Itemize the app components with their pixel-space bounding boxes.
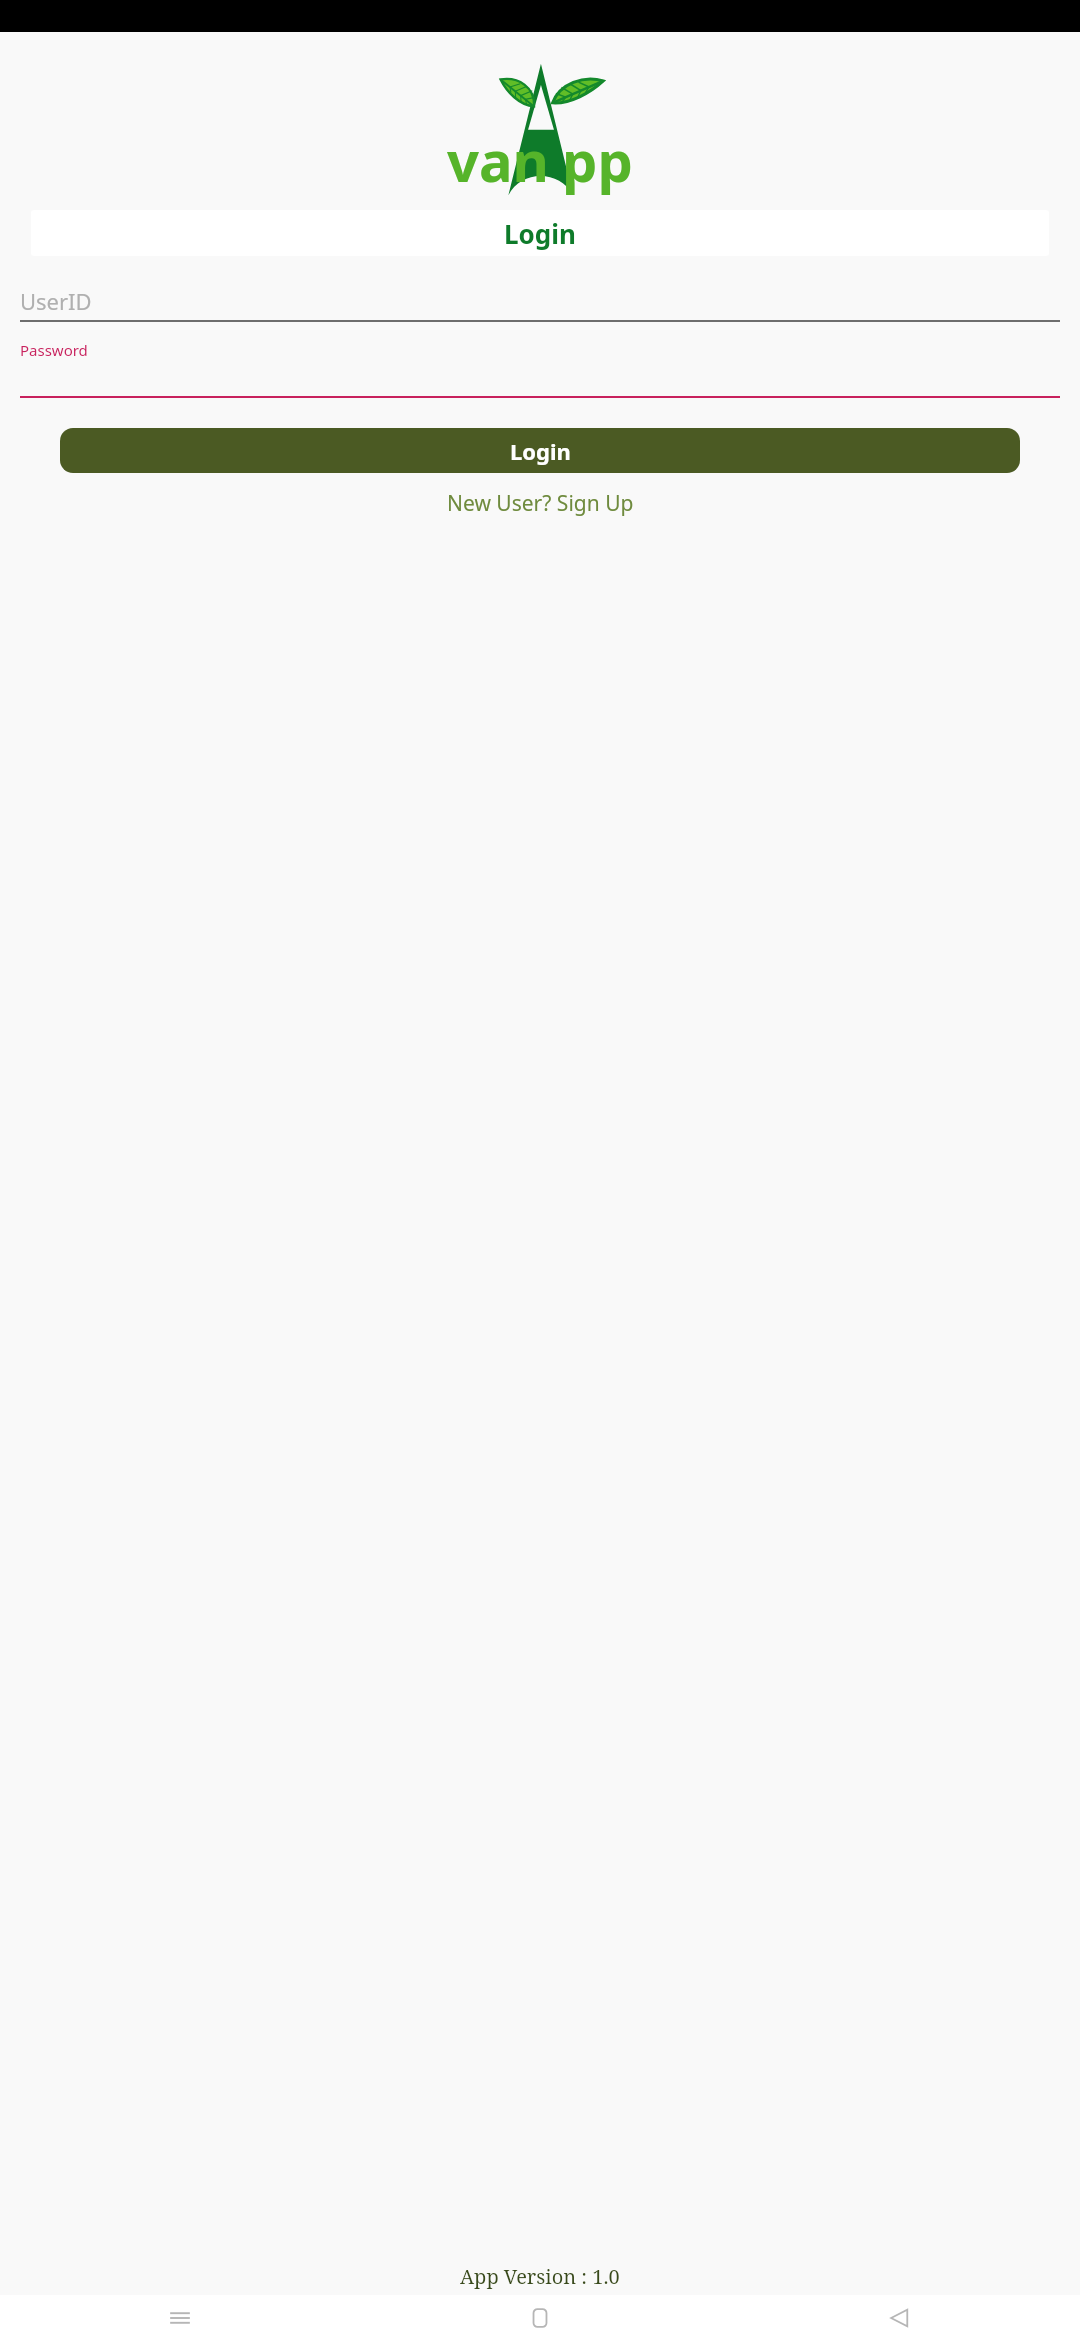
staticText: App Version : 1.0: [460, 2263, 620, 2290]
button[interactable]: Home: [360, 2295, 720, 2340]
button[interactable]: Password: [20, 340, 1060, 398]
staticText: Password: [20, 340, 88, 360]
staticText: van: [447, 122, 549, 198]
button[interactable]: Back: [720, 2295, 1080, 2340]
staticText: Login: [504, 216, 576, 251]
button[interactable]: Login: [60, 428, 1020, 473]
button[interactable]: Login: [31, 210, 1049, 256]
button[interactable]: New User? Sign Up: [433, 483, 648, 524]
staticText: pp: [562, 122, 633, 198]
button[interactable]: Recent apps: [0, 2295, 360, 2340]
button[interactable]: UserID: [20, 282, 1060, 322]
staticText: Login: [510, 436, 571, 466]
staticText: New User? Sign Up: [447, 489, 634, 518]
staticText: UserID: [20, 286, 92, 316]
